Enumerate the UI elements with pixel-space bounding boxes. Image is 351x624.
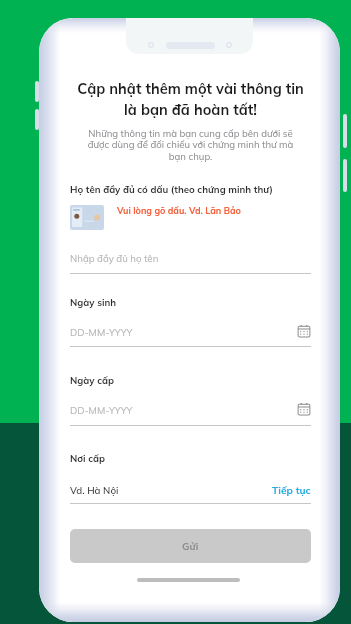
button[interactable]: Nhập đầy đủ họ tên (70, 252, 311, 275)
staticText: Cập nhật thêm một vài thông tin là bạn đ… (70, 79, 311, 118)
staticText: Gửi (182, 540, 199, 553)
button[interactable]: Vd. Hà Nội (70, 484, 311, 504)
staticText: DD-MM-YYYY (70, 404, 133, 416)
other: Pick date (297, 324, 311, 338)
staticText: Tiếp tục (272, 484, 311, 497)
staticText: Ngày cấp (70, 374, 114, 386)
staticText: Nhập đầy đủ họ tên (70, 252, 159, 264)
staticText: Ngày sinh (70, 296, 117, 308)
button[interactable]: Gửi (70, 529, 311, 563)
staticText: Vd. Hà Nội (70, 484, 119, 496)
button[interactable]: DD-MM-YYYY (70, 326, 311, 348)
staticText: DD-MM-YYYY (70, 326, 133, 338)
other: Pick date (297, 402, 311, 416)
staticText: Những thông tin mà bạn cung cấp bên dưới… (70, 127, 311, 163)
button[interactable]: DD-MM-YYYY (70, 404, 311, 426)
staticText: Nơi cấp (70, 452, 105, 464)
staticText: Vui lòng gõ dấu. Vd. Lãn Bảo (117, 205, 241, 216)
staticText: Họ tên đầy đủ có dấu (theo chứng minh th… (70, 183, 273, 195)
